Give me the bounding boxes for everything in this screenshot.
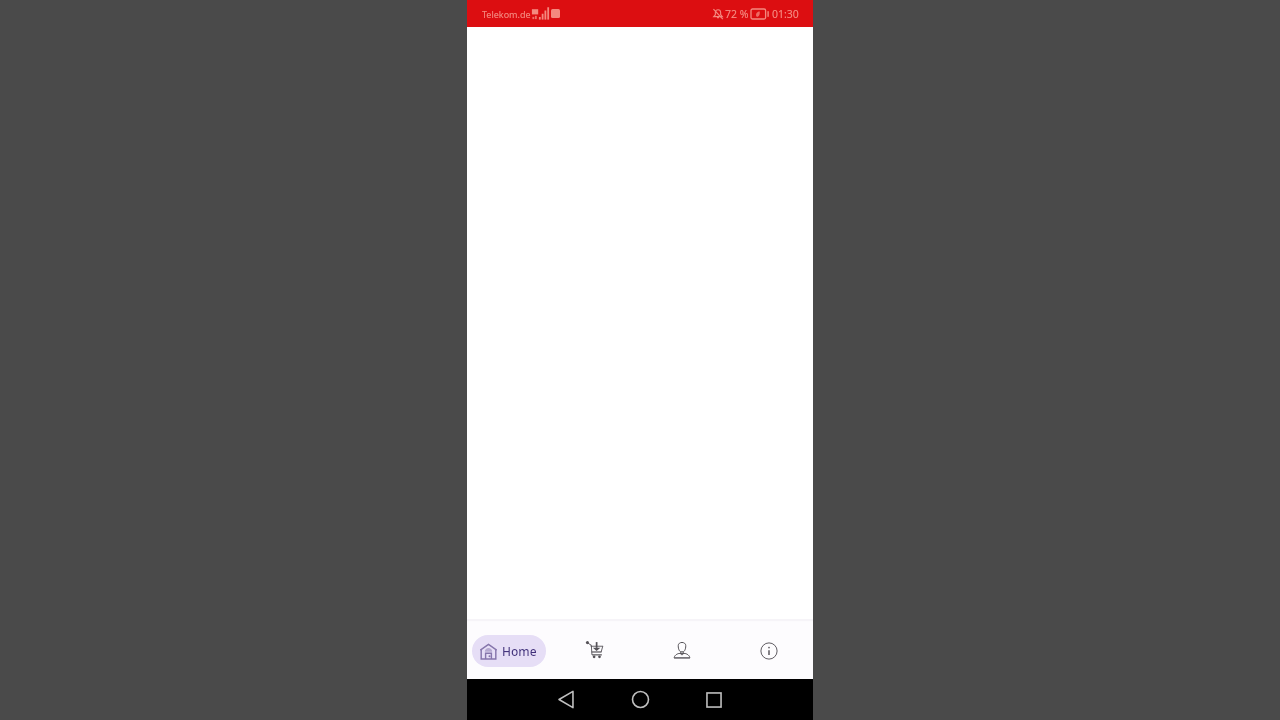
button[interactable]: Cart [553,619,639,679]
staticText: 72 % [725,7,749,21]
staticText: Telekom.de [482,8,531,20]
button[interactable]: Back [543,679,589,720]
button[interactable]: Home [617,679,663,720]
button[interactable]: Home [467,619,553,679]
button[interactable]: Profile [639,619,726,679]
button[interactable]: Home [472,635,546,667]
staticText: 01:30 [772,7,799,21]
button[interactable]: Recents [691,679,737,720]
button[interactable]: Info [726,619,813,679]
staticText: Home [502,643,537,659]
